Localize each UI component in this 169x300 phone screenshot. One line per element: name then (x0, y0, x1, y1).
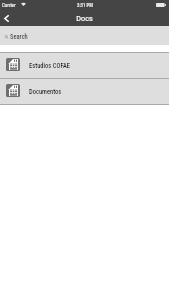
staticText: Search (10, 33, 28, 41)
staticText: Carrier (2, 2, 16, 8)
button[interactable]: Documentos (0, 79, 169, 104)
staticText: Docs (76, 14, 93, 22)
staticText: Documentos (29, 88, 62, 96)
button[interactable]: Estudios COFAE (0, 53, 169, 78)
button[interactable]: Search (0, 26, 169, 45)
staticText: Estudios COFAE (29, 62, 70, 70)
button[interactable]: Back (0, 11, 12, 26)
staticText: 3:31 PM (77, 3, 93, 9)
